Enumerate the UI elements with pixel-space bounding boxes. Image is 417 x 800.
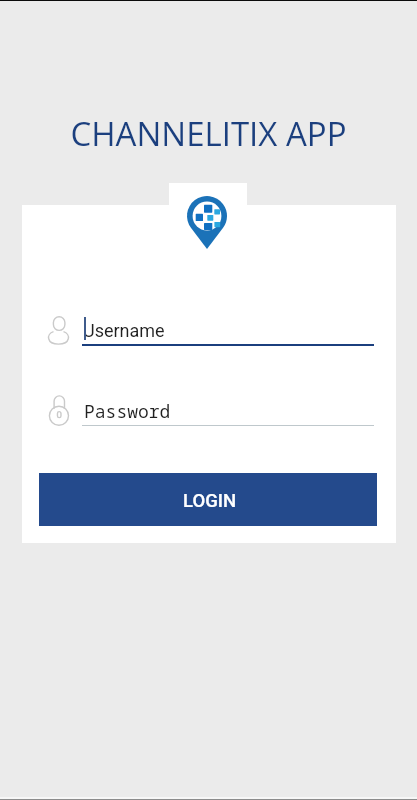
staticText: Username <box>83 320 165 341</box>
button[interactable]: Username <box>40 310 380 350</box>
staticText: CHANNELITIX APP <box>0 111 417 156</box>
staticText: LOGIN <box>183 490 237 512</box>
staticText: Password <box>84 399 171 424</box>
button[interactable]: Password <box>40 391 380 431</box>
button[interactable]: LOGIN <box>39 473 377 526</box>
